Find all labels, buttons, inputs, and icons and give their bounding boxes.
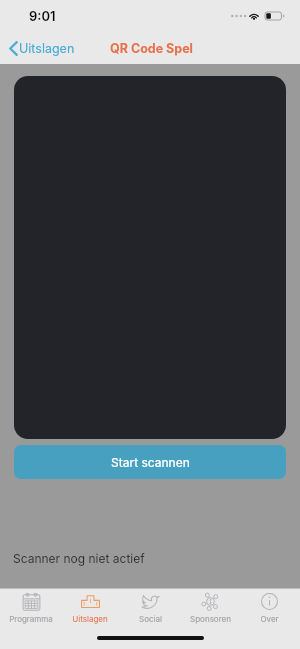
button[interactable]: Programma [2, 592, 60, 624]
button[interactable]: Start scannen [14, 445, 286, 479]
staticText: Uitslagen [72, 614, 108, 624]
staticText: Over [260, 614, 279, 624]
staticText: Start scannen [111, 455, 190, 470]
staticText: Sponsoren [190, 614, 231, 624]
staticText: Social [139, 614, 162, 624]
staticText: Uitslagen [19, 41, 75, 56]
button[interactable]: Social [121, 592, 179, 624]
button[interactable]: Sponsoren [181, 592, 239, 624]
button[interactable]: Uitslagen [61, 592, 119, 624]
button[interactable]: Uitslagen [0, 38, 83, 59]
staticText: QR Code Spel [110, 41, 193, 56]
button[interactable]: Over [240, 592, 298, 624]
staticText: 9:01 [29, 8, 56, 24]
staticText: Scanner nog niet actief [13, 551, 145, 566]
staticText: Programma [9, 614, 53, 624]
